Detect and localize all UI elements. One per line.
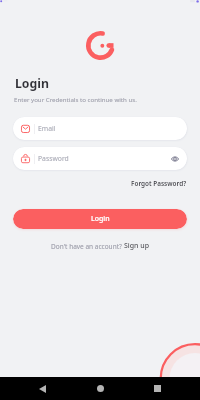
staticText: Login <box>91 214 110 224</box>
button[interactable]: Password <box>13 147 187 170</box>
button[interactable]: Sign up <box>124 241 150 251</box>
button[interactable]: Login <box>13 209 187 229</box>
button[interactable]: Show password <box>171 156 179 162</box>
button[interactable]: Back <box>39 385 46 393</box>
staticText: Forgot Password? <box>131 179 187 188</box>
button[interactable]: Home <box>97 385 104 392</box>
staticText: Login <box>15 75 50 92</box>
staticText: Password <box>38 154 69 163</box>
staticText: Email <box>38 124 56 133</box>
button[interactable]: Forgot Password? <box>13 179 187 188</box>
staticText: Enter your Credentials to continue with … <box>14 95 137 103</box>
staticText: Don't have an account? <box>51 242 124 251</box>
staticText: Sign up <box>124 241 150 251</box>
button[interactable]: Email <box>13 117 187 140</box>
